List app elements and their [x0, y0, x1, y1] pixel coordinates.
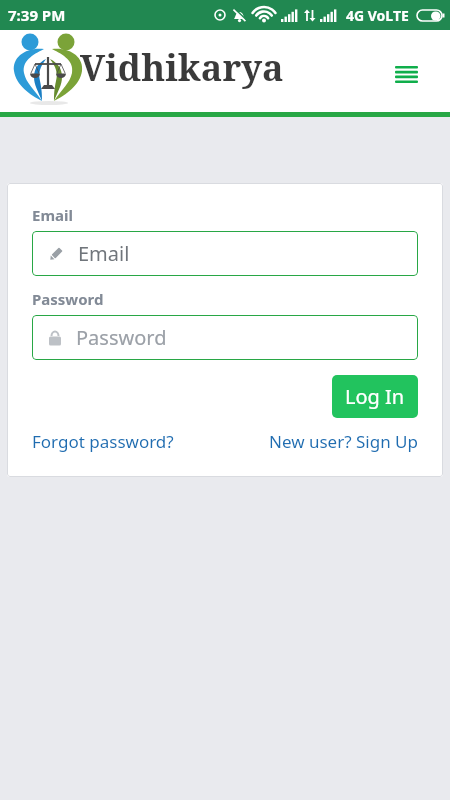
button[interactable]: Forgot password? [32, 430, 174, 453]
button[interactable]: Password [32, 315, 418, 360]
staticText: 7:39 PM [8, 5, 66, 25]
staticText: 4G VoLTE [346, 6, 409, 25]
staticText: Vidhikarya [80, 43, 284, 92]
button[interactable] [395, 66, 419, 84]
staticText: Email [32, 205, 73, 225]
staticText: Log In [345, 383, 405, 410]
button[interactable]: Email [32, 231, 418, 276]
staticText: Password [32, 289, 104, 309]
button[interactable]: Log In [332, 375, 418, 418]
button[interactable]: New user? Sign Up [269, 430, 418, 453]
staticText: Password [76, 324, 167, 351]
staticText: Email [78, 240, 130, 267]
